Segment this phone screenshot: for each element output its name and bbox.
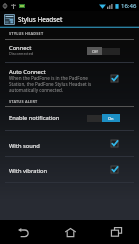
- staticText: Off: [92, 49, 98, 54]
- staticText: 16:46: [121, 2, 137, 10]
- button[interactable]: Stylus Headset: [0, 11, 139, 28]
- button[interactable]: Connect: [0, 40, 139, 63]
- staticText: STYLUS HEADSET: [9, 31, 44, 36]
- button[interactable]: Enable notification: [0, 107, 139, 130]
- staticText: Connect: [9, 44, 32, 52]
- staticText: Enable notification: [9, 114, 60, 122]
- button[interactable]: With vibration: [0, 157, 139, 183]
- button[interactable]: Auto Connect: [0, 63, 139, 93]
- staticText: Stylus Headset: [18, 15, 63, 24]
- button[interactable]: Recent apps: [93, 220, 139, 244]
- staticText: STATUS ALERT: [9, 99, 38, 104]
- staticText: When the PadFone is in the PadFone Stati…: [9, 75, 101, 93]
- button[interactable]: Back: [0, 220, 47, 244]
- staticText: On: [108, 116, 114, 121]
- button[interactable]: Checked: [110, 74, 119, 83]
- staticText: Disconnected: [9, 51, 34, 56]
- button[interactable]: Home: [47, 220, 93, 244]
- button[interactable]: Checked: [110, 165, 119, 174]
- button[interactable]: Connect, off: [87, 47, 120, 55]
- button[interactable]: Enable notification, on: [87, 114, 120, 122]
- staticText: Auto Connect: [9, 68, 46, 76]
- staticText: With sound: [9, 142, 40, 150]
- button[interactable]: With sound: [0, 131, 139, 157]
- staticText: With vibration: [9, 167, 47, 175]
- button[interactable]: Checked: [110, 139, 119, 148]
